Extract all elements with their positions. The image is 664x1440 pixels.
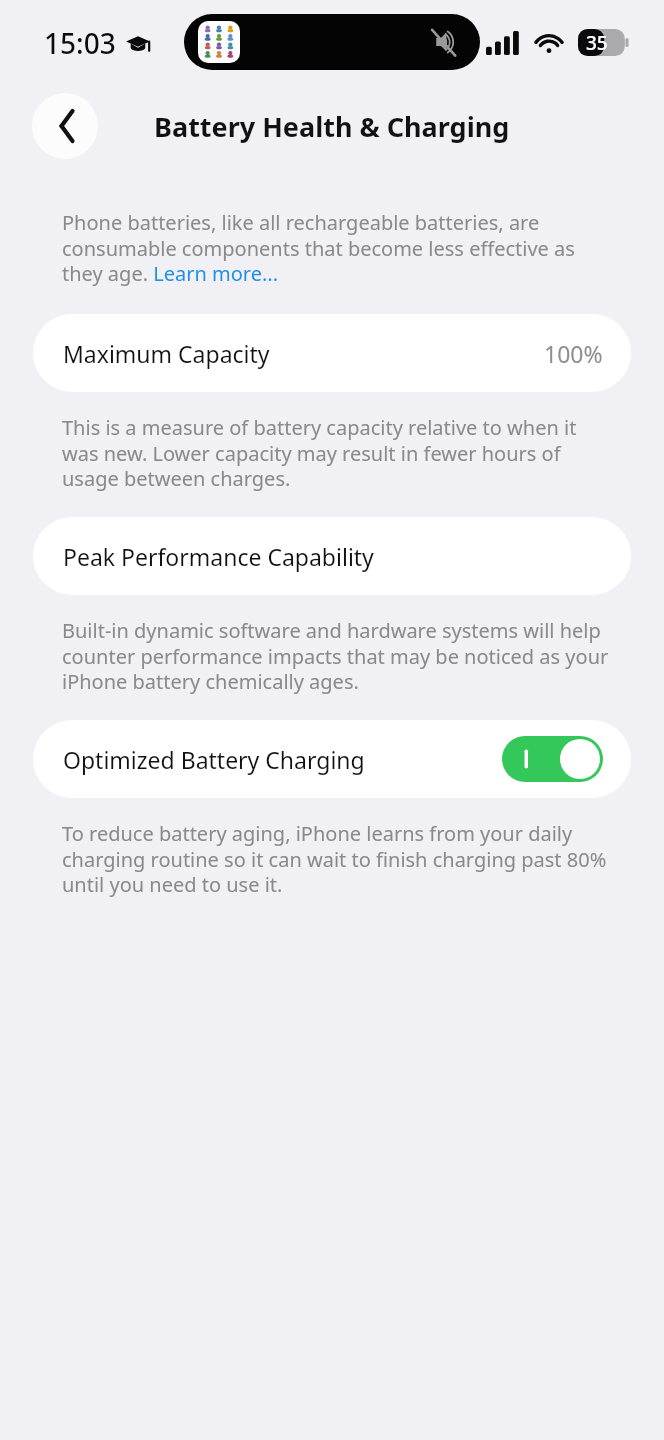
button[interactable]: Optimized Battery Charging <box>33 720 631 798</box>
staticText: Battery Health & Charging <box>154 108 510 145</box>
staticText: 15:03 <box>44 24 116 62</box>
staticText: Optimized Battery Charging <box>63 744 365 775</box>
button[interactable]: Back <box>32 93 98 159</box>
staticText: To reduce battery aging, iPhone learns f… <box>62 820 612 897</box>
staticText: Built-in dynamic software and hardware s… <box>62 617 612 694</box>
staticText: 35 <box>586 30 608 56</box>
staticText: Maximum Capacity <box>63 338 270 369</box>
staticText: This is a measure of battery capacity re… <box>62 414 612 491</box>
button[interactable]: Maximum Capacity <box>33 314 631 392</box>
staticText: 100% <box>544 338 603 369</box>
staticText: Peak Performance Capability <box>63 541 374 572</box>
button[interactable]: Optimized Battery Charging toggle, on <box>502 736 603 782</box>
staticText: Phone batteries, like all rechargeable b… <box>62 209 612 286</box>
button[interactable]: Peak Performance Capability <box>33 517 631 595</box>
